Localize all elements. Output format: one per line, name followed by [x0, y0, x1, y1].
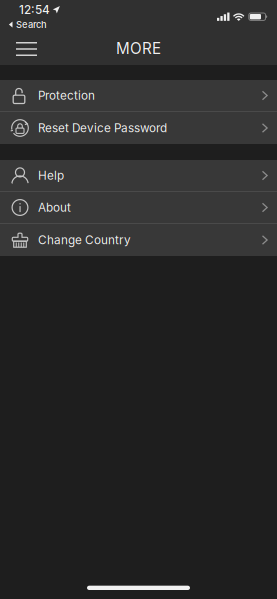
staticText: 12:54 — [19, 3, 50, 17]
staticText: Search — [16, 19, 47, 30]
button[interactable]: Reset Device Password — [0, 112, 277, 144]
staticText: Change Country — [38, 233, 131, 247]
button[interactable]: Menu — [0, 30, 51, 65]
staticText: About — [38, 200, 71, 215]
button[interactable]: Help — [0, 160, 277, 192]
button[interactable]: About — [0, 192, 277, 224]
button[interactable]: Protection — [0, 80, 277, 112]
staticText: Reset Device Password — [38, 121, 167, 135]
staticText: Protection — [38, 88, 95, 103]
staticText: MORE — [116, 39, 161, 58]
staticText: Help — [38, 168, 64, 183]
button[interactable]: Change Country — [0, 224, 277, 256]
